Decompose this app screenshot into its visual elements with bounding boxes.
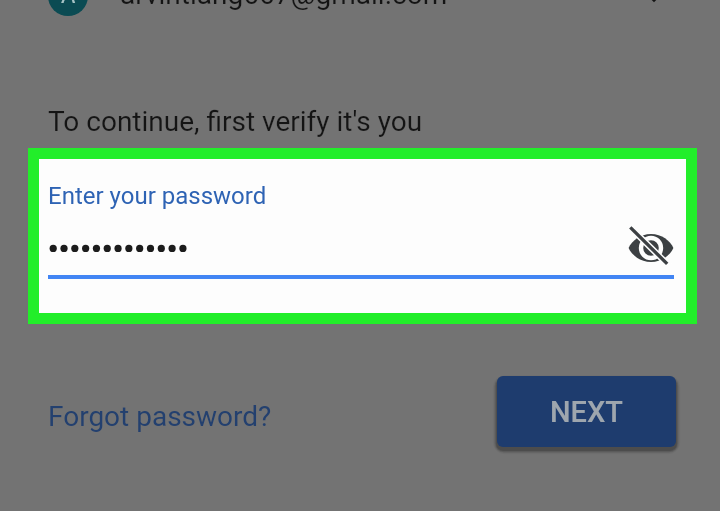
staticText: Enter your password — [48, 182, 267, 210]
staticText: arvintiang667@gmail.com — [120, 0, 448, 11]
staticText: A — [61, 0, 76, 9]
staticText: To continue, first verify it's you — [48, 105, 423, 138]
button[interactable]: NEXT — [497, 376, 676, 447]
staticText: Forgot password? — [48, 400, 272, 433]
button[interactable]: Enter your password — [39, 159, 686, 313]
staticText: NEXT — [550, 395, 623, 429]
button[interactable]: Forgot password? — [40, 394, 280, 439]
button[interactable]: A — [30, 0, 690, 22]
button[interactable]: Show password — [625, 222, 677, 274]
button[interactable]: Expand account list — [634, 0, 674, 19]
